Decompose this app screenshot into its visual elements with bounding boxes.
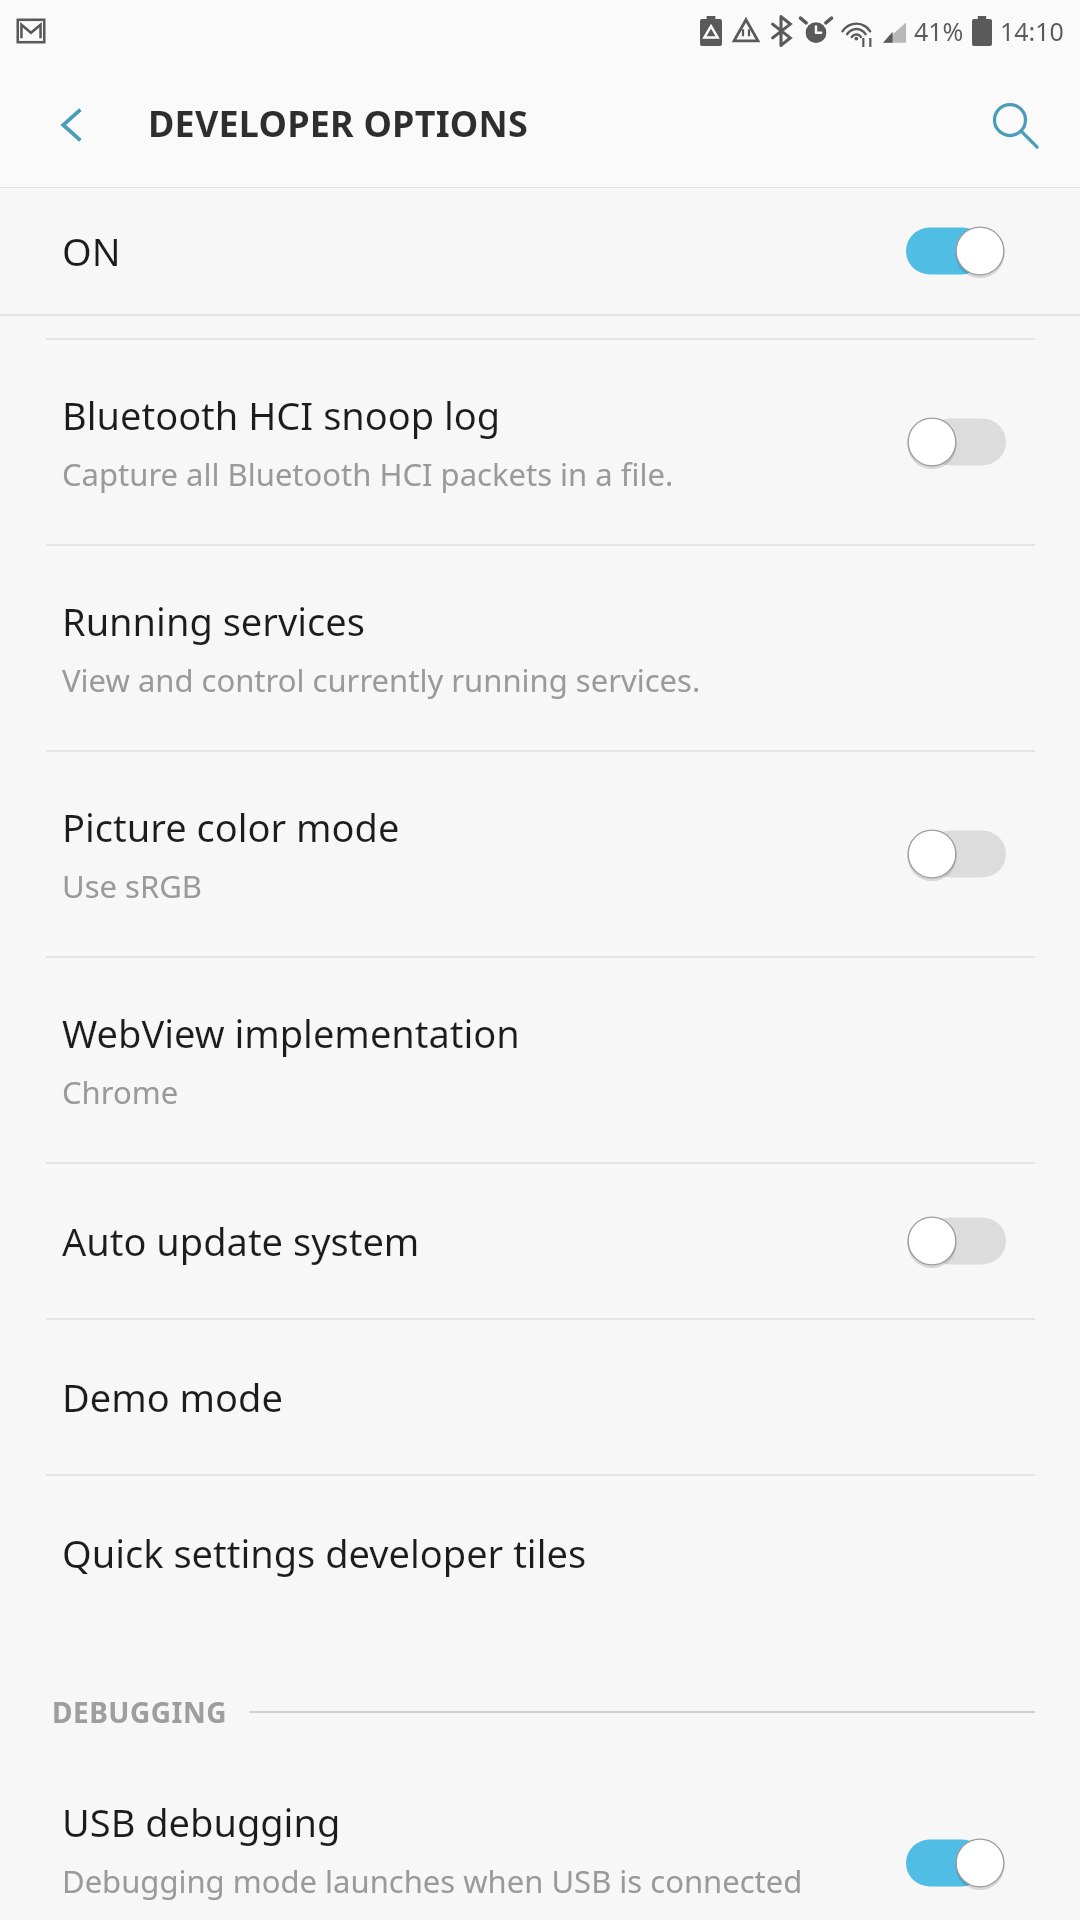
button[interactable]: WebView implementation (0, 958, 1080, 1162)
button[interactable]: On (906, 221, 1006, 281)
button[interactable]: Off (906, 824, 1006, 884)
staticText: Running services (62, 595, 365, 647)
staticText: USB debugging (62, 1796, 341, 1848)
staticText: WebView implementation (62, 1007, 520, 1059)
staticText: Debugging mode launches when USB is conn… (62, 1860, 803, 1902)
button[interactable]: Auto update system (0, 1164, 1080, 1318)
staticText: DEBUGGING (52, 1693, 227, 1731)
staticText: 41% (914, 14, 964, 48)
staticText: Chrome (62, 1071, 179, 1113)
staticText: ON (62, 225, 121, 277)
button[interactable]: Off (906, 412, 1006, 472)
button[interactable]: Demo mode (0, 1320, 1080, 1474)
button[interactable]: Search (966, 77, 1062, 173)
staticText: Capture all Bluetooth HCI packets in a f… (62, 453, 674, 495)
button[interactable]: USB debugging (0, 1778, 1080, 1920)
staticText: DEVELOPER OPTIONS (148, 99, 529, 148)
staticText: Bluetooth HCI snoop log (62, 389, 501, 441)
staticText: View and control currently running servi… (62, 659, 701, 701)
button[interactable]: Running services (0, 546, 1080, 750)
button[interactable]: Off (906, 1211, 1006, 1271)
button[interactable]: Quick settings developer tiles (0, 1476, 1080, 1630)
staticText: Demo mode (62, 1371, 283, 1423)
staticText: Use sRGB (62, 865, 202, 907)
staticText: Auto update system (62, 1215, 420, 1267)
staticText: Picture color mode (62, 801, 400, 853)
staticText: Quick settings developer tiles (62, 1527, 587, 1579)
button[interactable]: ON (0, 188, 1080, 314)
staticText: 14:10 (1000, 14, 1064, 48)
button[interactable]: Back (24, 77, 120, 173)
button[interactable]: Bluetooth HCI snoop log (0, 340, 1080, 544)
button[interactable]: Picture color mode (0, 752, 1080, 956)
button[interactable]: On (906, 1833, 1006, 1893)
